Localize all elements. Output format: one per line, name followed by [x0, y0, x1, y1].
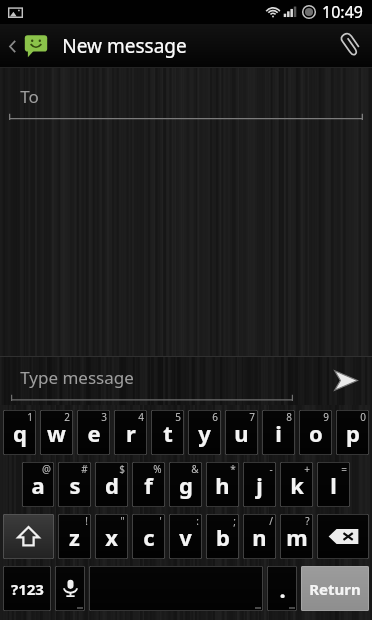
- button[interactable]: h: [206, 462, 239, 507]
- staticText: h: [215, 470, 230, 500]
- staticText: 5: [175, 410, 181, 424]
- button[interactable]: q: [3, 410, 36, 455]
- button[interactable]: i: [262, 410, 295, 455]
- staticText: u: [234, 418, 249, 448]
- button[interactable]: ?123: [3, 566, 51, 611]
- button[interactable]: p: [336, 410, 369, 455]
- button[interactable]: l: [317, 462, 350, 507]
- staticText: c: [143, 522, 155, 552]
- button[interactable]: Send: [318, 356, 372, 405]
- staticText: Type message: [20, 366, 134, 389]
- button[interactable]: Space: [89, 566, 263, 611]
- staticText: $: [119, 462, 125, 476]
- staticText: k: [290, 470, 304, 500]
- button[interactable]: b: [206, 514, 239, 559]
- staticText: ?123: [11, 579, 44, 599]
- button[interactable]: k: [280, 462, 313, 507]
- staticText: +: [304, 462, 310, 476]
- button[interactable]: j: [243, 462, 276, 507]
- button[interactable]: Voice input: [55, 566, 85, 611]
- button[interactable]: f: [132, 462, 165, 507]
- staticText: x: [105, 522, 118, 552]
- staticText: 6: [212, 410, 218, 424]
- button[interactable]: x: [95, 514, 128, 559]
- staticText: %: [153, 462, 162, 476]
- staticText: w: [47, 418, 66, 448]
- staticText: *: [230, 462, 236, 476]
- button[interactable]: Delete: [317, 514, 369, 559]
- staticText: &: [191, 462, 199, 476]
- staticText: !: [85, 514, 88, 528]
- button[interactable]: o: [299, 410, 332, 455]
- staticText: y: [198, 418, 211, 448]
- staticText: l: [330, 470, 337, 500]
- staticText: :: [196, 514, 199, 528]
- button[interactable]: d: [95, 462, 128, 507]
- button[interactable]: m: [280, 514, 313, 559]
- staticText: 2: [64, 410, 70, 424]
- button[interactable]: w: [40, 410, 73, 455]
- staticText: t: [163, 418, 173, 448]
- staticText: o: [309, 418, 323, 448]
- staticText: Return: [309, 579, 361, 599]
- staticText: @: [42, 462, 51, 476]
- staticText: s: [69, 470, 81, 500]
- button[interactable]: t: [151, 410, 184, 455]
- button[interactable]: Return: [301, 566, 369, 611]
- staticText: m: [286, 522, 308, 552]
- staticText: -: [269, 462, 273, 476]
- button[interactable]: .: [267, 566, 297, 611]
- staticText: ?: [305, 514, 310, 528]
- button[interactable]: y: [188, 410, 221, 455]
- staticText: 1: [27, 410, 33, 424]
- staticText: q: [13, 418, 27, 448]
- staticText: r: [126, 418, 136, 448]
- button[interactable]: e: [77, 410, 110, 455]
- staticText: 8: [286, 410, 292, 424]
- button[interactable]: n: [243, 514, 276, 559]
- button[interactable]: Type message: [0, 358, 300, 403]
- staticText: 3: [101, 410, 107, 424]
- staticText: =: [341, 462, 347, 476]
- staticText: p: [346, 418, 360, 448]
- staticText: ': [159, 514, 162, 528]
- staticText: ": [120, 514, 125, 528]
- staticText: .: [279, 574, 286, 604]
- staticText: i: [275, 418, 282, 448]
- button[interactable]: u: [225, 410, 258, 455]
- staticText: 7: [249, 410, 255, 424]
- staticText: #: [81, 462, 88, 476]
- staticText: 10:49: [322, 1, 363, 23]
- staticText: e: [87, 418, 101, 448]
- button[interactable]: Attach: [326, 24, 372, 68]
- button[interactable]: Shift: [3, 514, 54, 559]
- button[interactable]: g: [169, 462, 202, 507]
- staticText: 4: [138, 410, 144, 424]
- button[interactable]: z: [58, 514, 91, 559]
- staticText: 0: [360, 410, 366, 424]
- staticText: g: [179, 470, 193, 500]
- button[interactable]: s: [58, 462, 91, 507]
- staticText: f: [144, 470, 153, 500]
- staticText: ;: [233, 514, 236, 528]
- staticText: d: [105, 470, 119, 500]
- button[interactable]: v: [169, 514, 202, 559]
- staticText: z: [69, 522, 80, 552]
- staticText: n: [252, 522, 267, 552]
- button[interactable]: a: [22, 462, 54, 507]
- staticText: 9: [323, 410, 329, 424]
- staticText: v: [179, 522, 192, 552]
- button[interactable]: c: [132, 514, 165, 559]
- button[interactable]: r: [114, 410, 147, 455]
- button[interactable]: To: [0, 76, 372, 120]
- staticText: To: [20, 85, 39, 108]
- staticText: b: [216, 522, 230, 552]
- staticText: /: [269, 514, 273, 528]
- staticText: a: [31, 470, 45, 500]
- button[interactable]: Navigate up: [0, 28, 52, 64]
- staticText: New message: [62, 33, 187, 59]
- staticText: j: [256, 470, 263, 500]
